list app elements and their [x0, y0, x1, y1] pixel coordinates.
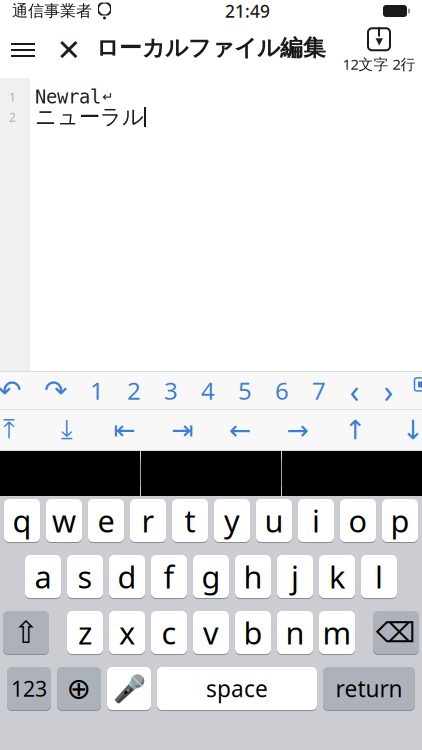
button[interactable]: 7 [300, 372, 337, 408]
button[interactable]: 先頭へ [0, 412, 38, 448]
staticText: ⇤ [114, 415, 136, 445]
staticText: b [243, 612, 262, 653]
button[interactable]: m [319, 610, 355, 655]
staticText: ⤓ [61, 417, 73, 443]
staticText: z [78, 612, 92, 653]
button[interactable]: w [46, 498, 82, 543]
button[interactable]: h [235, 554, 271, 599]
button[interactable]: f [151, 554, 187, 599]
staticText: 6 [275, 375, 289, 406]
button[interactable]: p [382, 498, 418, 543]
staticText: v [203, 612, 219, 653]
button[interactable]: 左へ [211, 412, 269, 448]
staticText: f [163, 556, 174, 597]
button[interactable]: メニュー [0, 28, 46, 72]
staticText: p [390, 500, 409, 541]
button[interactable]: やり直す [32, 372, 78, 408]
button[interactable]: j [277, 554, 313, 599]
button[interactable]: 閉じる [46, 28, 92, 72]
button[interactable]: e [88, 498, 124, 543]
button[interactable]: x [109, 610, 145, 655]
staticText: n [285, 612, 304, 653]
button[interactable]: b [235, 610, 271, 655]
button[interactable]: u [256, 498, 292, 543]
staticText: y [224, 500, 240, 541]
staticText: 3 [164, 375, 178, 406]
button[interactable]: 末尾へ [38, 412, 96, 448]
button[interactable]: t [172, 498, 208, 543]
staticText: 🎤 [112, 673, 145, 704]
staticText: q [12, 500, 31, 541]
staticText: 123 [11, 674, 47, 703]
button[interactable]: 2 [115, 372, 152, 408]
button[interactable]: シフト [3, 610, 49, 655]
staticText: r [141, 500, 154, 541]
button[interactable]: n [277, 610, 313, 655]
button[interactable]: 6 [263, 372, 300, 408]
button[interactable]: 行頭へ [96, 412, 153, 448]
staticText: ▾ [375, 32, 382, 49]
staticText: 1 [90, 375, 104, 406]
staticText: Newral [35, 86, 101, 108]
staticText: ⤒ [3, 417, 15, 443]
button[interactable]: s [67, 554, 103, 599]
button[interactable]: 保存 [336, 24, 422, 76]
button[interactable]: 右へ [269, 412, 326, 448]
staticText: ニューラル [35, 104, 144, 130]
button[interactable]: i [298, 498, 334, 543]
button[interactable]: キーボードを閉じる [414, 372, 422, 408]
staticText: 21:49 [225, 0, 270, 22]
staticText: ⌫ [376, 617, 416, 648]
button[interactable]: 削除 [373, 610, 419, 655]
staticText: l [375, 556, 383, 597]
button[interactable]: 前へ [337, 372, 371, 408]
staticText: ローカルファイル編集 [96, 34, 326, 62]
button[interactable]: d [109, 554, 145, 599]
button[interactable]: 3 [152, 372, 189, 408]
button[interactable]: k [319, 554, 355, 599]
staticText: t [184, 500, 195, 541]
staticText: ↷ [44, 375, 67, 406]
button[interactable]: 音声入力 [107, 666, 151, 711]
button[interactable]: r [130, 498, 166, 543]
staticText: h [243, 556, 262, 597]
staticText: ✕ [56, 33, 81, 67]
staticText: 2 [9, 109, 16, 125]
button[interactable]: l [361, 554, 397, 599]
button[interactable]: 数字キーボード [7, 666, 51, 711]
button[interactable]: 下へ [384, 412, 422, 448]
button[interactable]: g [193, 554, 229, 599]
button[interactable]: z [67, 610, 103, 655]
button[interactable]: 5 [226, 372, 263, 408]
button[interactable]: 行末へ [153, 412, 211, 448]
staticText: d [117, 556, 136, 597]
staticText: m [322, 612, 351, 653]
staticText: o [348, 500, 367, 541]
button[interactable]: o [340, 498, 376, 543]
button[interactable]: space [157, 666, 317, 711]
button[interactable]: 1 [78, 372, 115, 408]
staticText: w [52, 500, 76, 541]
staticText: ⇥ [171, 415, 193, 445]
button[interactable]: q [4, 498, 40, 543]
button[interactable]: c [151, 610, 187, 655]
staticText: 1 [9, 89, 16, 105]
button[interactable]: 次へ [371, 372, 405, 408]
button[interactable]: 元に戻す [0, 372, 32, 408]
button[interactable]: v [193, 610, 229, 655]
staticText: ⊕ [66, 672, 91, 705]
button[interactable]: 上へ [326, 412, 384, 448]
staticText: ↵ [102, 89, 113, 104]
staticText: ↓ [402, 415, 422, 445]
staticText: k [329, 556, 345, 597]
button[interactable]: 言語を切り替え [57, 666, 101, 711]
staticText: ← [229, 415, 251, 445]
staticText: 5 [238, 375, 252, 406]
button[interactable]: a [25, 554, 61, 599]
button[interactable]: 改行 [323, 666, 415, 711]
button[interactable]: y [214, 498, 250, 543]
button[interactable]: 4 [189, 372, 226, 408]
